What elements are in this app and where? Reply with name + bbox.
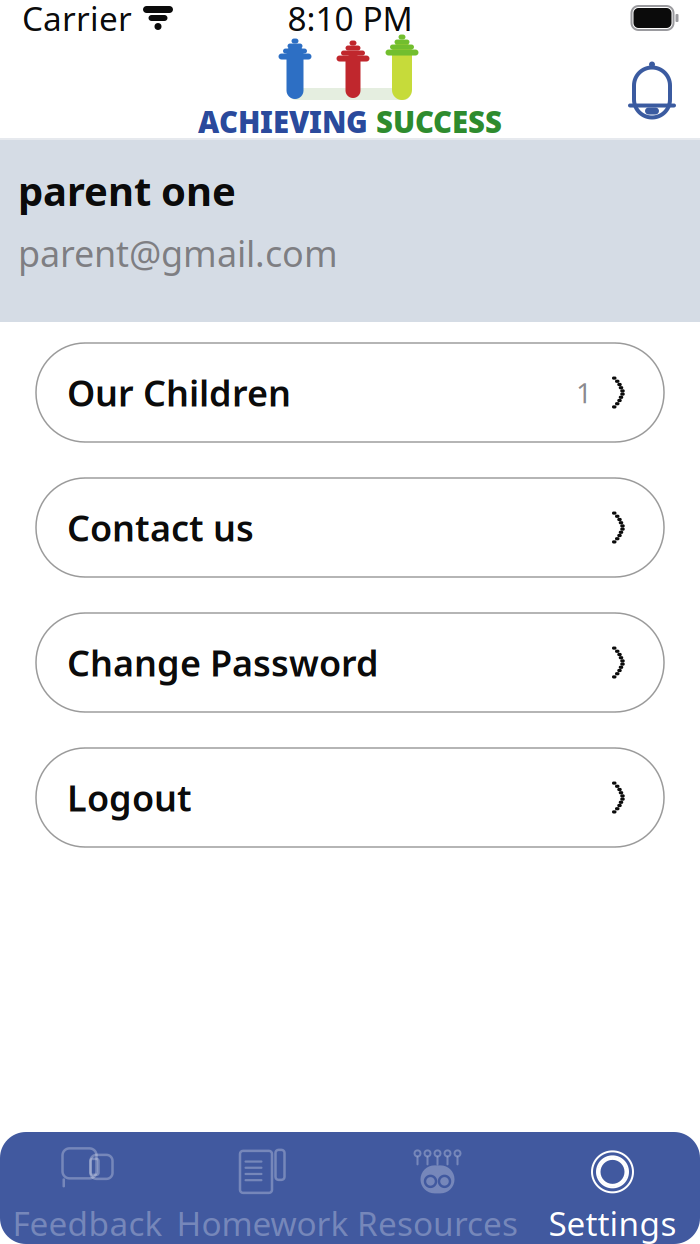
staticText: Homework <box>176 1201 348 1244</box>
staticText: 1 <box>576 374 592 411</box>
staticText: Resources <box>357 1201 518 1244</box>
staticText: Settings <box>548 1201 676 1244</box>
staticText: Logout <box>67 774 192 821</box>
staticText: parent@gmail.com <box>18 229 338 277</box>
button[interactable]: Our Children <box>36 343 664 442</box>
staticText: Feedback <box>12 1201 162 1244</box>
staticText: parent one <box>18 164 236 217</box>
button[interactable]: Settings <box>525 1148 700 1244</box>
button[interactable]: Resources <box>350 1148 525 1244</box>
staticText: Change Password <box>67 639 379 686</box>
button[interactable]: Contact us <box>36 478 664 577</box>
button[interactable]: Homework <box>175 1148 350 1244</box>
button[interactable]: Notifications <box>624 58 680 118</box>
staticText: ACHIEVING <box>198 102 368 141</box>
button[interactable]: Feedback <box>0 1148 175 1244</box>
button[interactable]: Logout <box>36 748 664 847</box>
button[interactable]: Change Password <box>36 613 664 712</box>
staticText: 8:10 PM <box>287 0 412 40</box>
staticText: Our Children <box>67 369 291 416</box>
staticText: Contact us <box>67 504 254 551</box>
staticText: Carrier <box>22 0 132 40</box>
staticText: SUCCESS <box>376 102 502 141</box>
